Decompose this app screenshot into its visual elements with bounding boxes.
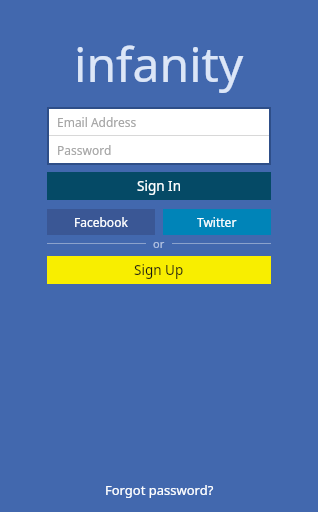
- staticText: or: [153, 236, 165, 251]
- staticText: Forgot password?: [105, 481, 214, 499]
- staticText: infanity: [74, 31, 244, 96]
- button[interactable]: Sign Up: [47, 256, 271, 284]
- button[interactable]: Email Address: [49, 109, 269, 135]
- button[interactable]: Sign In: [47, 172, 271, 200]
- staticText: Facebook: [74, 214, 128, 230]
- button[interactable]: Facebook: [47, 209, 155, 235]
- staticText: Twitter: [197, 214, 237, 230]
- button[interactable]: Twitter: [163, 209, 271, 235]
- button[interactable]: Password: [49, 136, 269, 163]
- staticText: Sign In: [137, 177, 181, 195]
- staticText: Email Address: [57, 114, 137, 130]
- staticText: Sign Up: [134, 261, 184, 279]
- staticText: Password: [57, 142, 112, 158]
- button[interactable]: Forgot password?: [105, 481, 214, 499]
